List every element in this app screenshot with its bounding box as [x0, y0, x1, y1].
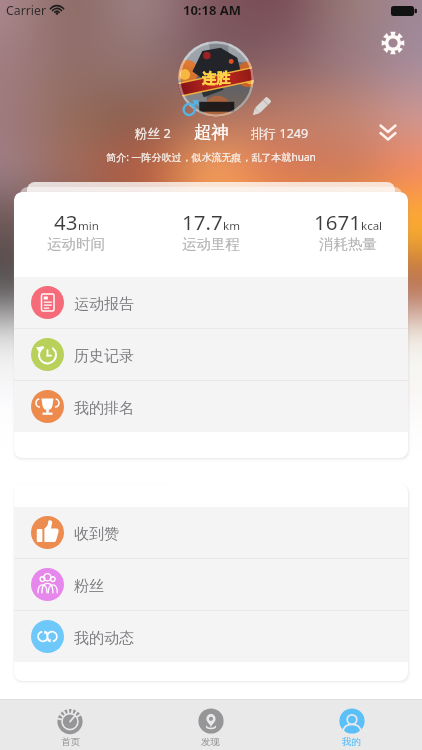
staticText: 17.7 — [182, 208, 223, 236]
staticText: kcal — [361, 218, 383, 234]
staticText: 43 — [54, 208, 78, 236]
staticText: 超神 — [194, 121, 229, 141]
staticText: 粉丝 — [74, 577, 104, 596]
button[interactable]: 粉丝 — [14, 559, 408, 610]
button[interactable]: Profile picture — [178, 41, 254, 117]
button[interactable]: 收到赞 — [14, 507, 408, 558]
staticText: 我的排名 — [74, 399, 134, 418]
staticText: km — [223, 218, 240, 234]
button[interactable]: Expand profile — [372, 116, 404, 148]
button[interactable]: 我的排名 — [14, 381, 408, 432]
button[interactable]: Settings — [375, 25, 411, 61]
staticText: 首页 — [61, 736, 80, 748]
staticText: 我的 — [342, 736, 361, 748]
button[interactable]: 我的 — [281, 700, 422, 750]
button[interactable]: 首页 — [0, 700, 140, 750]
staticText: 粉丝 2 — [135, 125, 171, 142]
staticText: min — [78, 218, 99, 234]
staticText: 排行 1249 — [251, 125, 309, 142]
staticText: 消耗热量 — [319, 235, 377, 253]
button[interactable]: 我的动态 — [14, 611, 408, 662]
button[interactable]: 发现 — [140, 700, 281, 750]
staticText: Carrier — [6, 2, 47, 19]
staticText: 10:18 AM — [183, 1, 242, 19]
staticText: 收到赞 — [74, 525, 119, 544]
staticText: 1671 — [314, 208, 361, 236]
staticText: 运动时间 — [47, 235, 105, 253]
button[interactable]: Edit profile — [246, 92, 276, 122]
staticText: 连胜 — [202, 70, 230, 88]
button[interactable]: 运动报告 — [14, 277, 408, 328]
staticText: 运动报告 — [74, 295, 134, 314]
staticText: 简介: 一阵分吹过，似水流无痕，乱了本就huan — [106, 150, 316, 164]
button[interactable]: 历史记录 — [14, 329, 408, 380]
staticText: 运动里程 — [182, 235, 240, 253]
staticText: 发现 — [201, 736, 220, 748]
staticText: 我的动态 — [74, 629, 134, 648]
staticText: 历史记录 — [74, 347, 134, 366]
